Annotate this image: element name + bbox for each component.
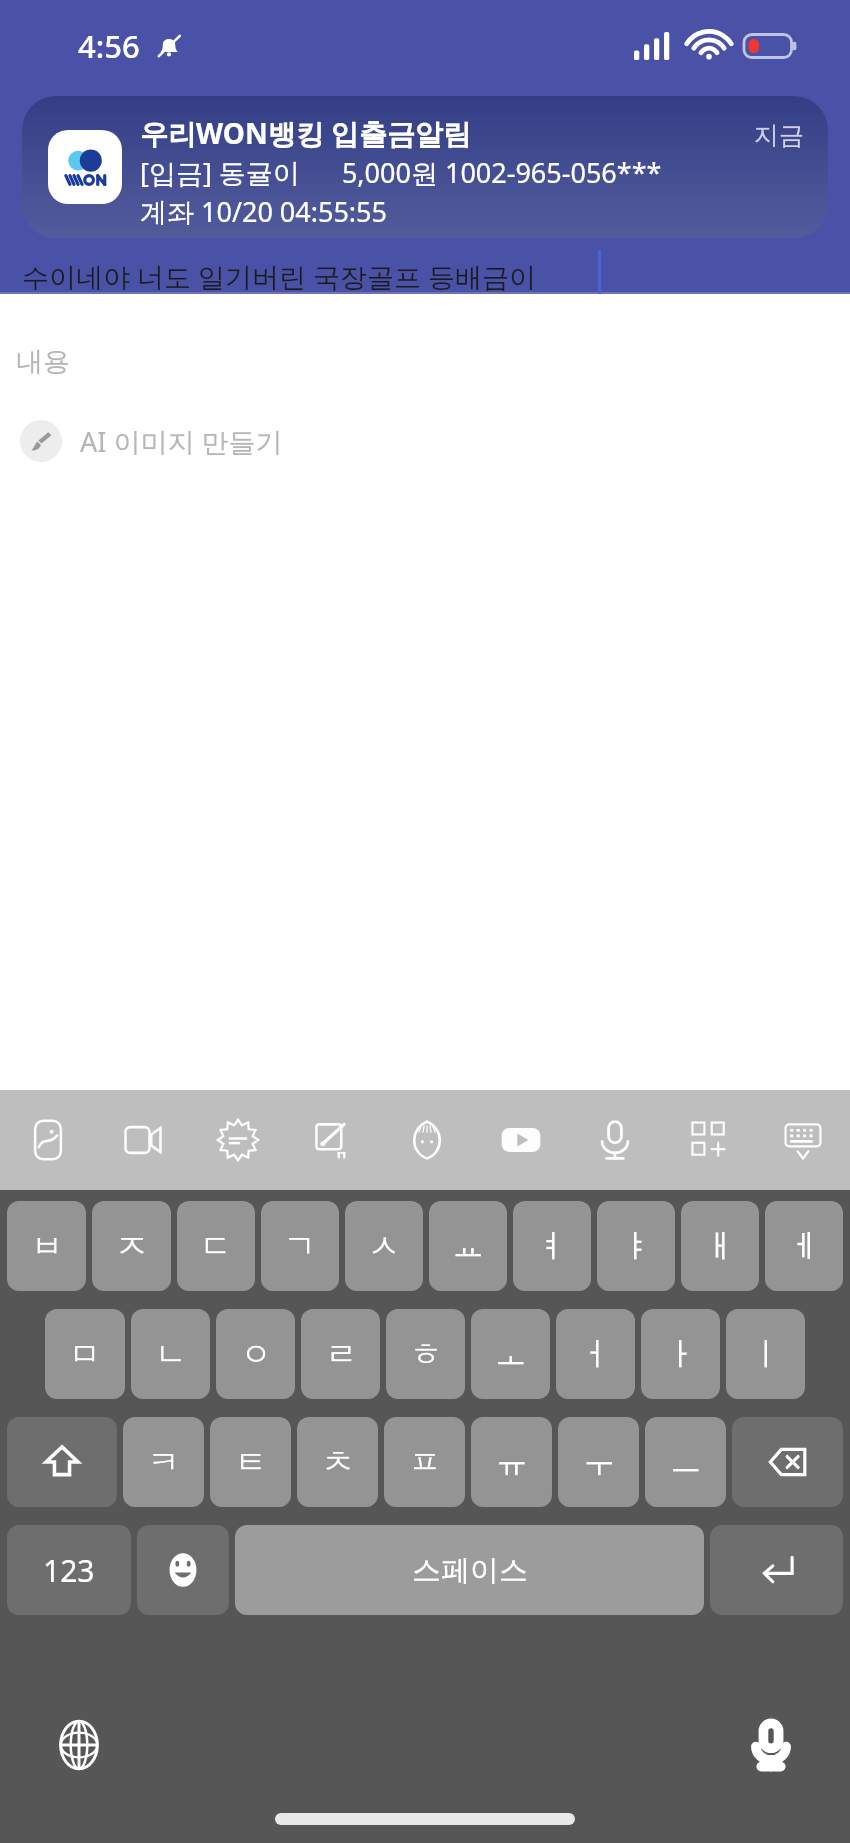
staticText: ㅜ bbox=[583, 1442, 615, 1482]
button[interactable]: ㅊ bbox=[297, 1417, 378, 1507]
button[interactable]: ㄷ bbox=[177, 1201, 255, 1291]
button[interactable]: ㅌ bbox=[210, 1417, 291, 1507]
button[interactable]: Change language bbox=[42, 1708, 116, 1782]
staticText: ㅋ bbox=[148, 1442, 180, 1482]
staticText: ㄷ bbox=[200, 1226, 232, 1266]
staticText: [입금] 동귤이 5,000원 1002-965-056*** bbox=[140, 154, 662, 191]
staticText: ㅁ bbox=[69, 1334, 101, 1374]
button[interactable]: ㅅ bbox=[345, 1201, 423, 1291]
button[interactable]: ㅈ bbox=[92, 1201, 171, 1291]
button[interactable]: ㅓ bbox=[556, 1309, 635, 1399]
button[interactable]: 내용 bbox=[0, 334, 850, 390]
button[interactable]: AI 이미지 만들기 bbox=[0, 410, 850, 472]
staticText: 스페이스 bbox=[412, 1552, 528, 1589]
button[interactable]: Sticker bbox=[380, 1090, 474, 1190]
button[interactable]: 123 bbox=[7, 1525, 131, 1615]
button[interactable]: AI drawing bbox=[285, 1090, 380, 1190]
staticText: ㅔ bbox=[788, 1226, 820, 1266]
staticText: ㅛ bbox=[452, 1226, 484, 1266]
staticText: 계좌 10/20 04:55:55 bbox=[140, 193, 387, 230]
button[interactable]: ㅇ bbox=[216, 1309, 295, 1399]
button[interactable]: YouTube bbox=[474, 1090, 568, 1190]
button[interactable]: ㅜ bbox=[558, 1417, 639, 1507]
button[interactable]: Enter bbox=[710, 1525, 843, 1615]
button[interactable]: Emoji bbox=[137, 1525, 229, 1615]
button[interactable]: ㅑ bbox=[597, 1201, 675, 1291]
staticText: ㅌ bbox=[235, 1442, 267, 1482]
button[interactable]: ㅕ bbox=[513, 1201, 591, 1291]
button[interactable]: Hide keyboard bbox=[756, 1090, 850, 1190]
staticText: 우리WON뱅킹 입출금알림 bbox=[140, 114, 471, 152]
staticText: ㅍ bbox=[409, 1442, 441, 1482]
staticText: ㅓ bbox=[580, 1334, 612, 1374]
staticText: AI 이미지 만들기 bbox=[80, 423, 283, 460]
staticText: ㅂ bbox=[31, 1226, 63, 1266]
button[interactable]: ㄱ bbox=[261, 1201, 339, 1291]
staticText: ㅊ bbox=[322, 1442, 354, 1482]
button[interactable]: ㅎ bbox=[386, 1309, 465, 1399]
button[interactable]: ㅂ bbox=[7, 1201, 86, 1291]
staticText: 내용 bbox=[16, 345, 70, 379]
button[interactable]: ㄹ bbox=[301, 1309, 380, 1399]
button[interactable]: Voice bbox=[568, 1090, 662, 1190]
staticText: ㄹ bbox=[325, 1334, 357, 1374]
button[interactable]: 우리WON뱅킹 입출금알림 bbox=[22, 96, 828, 238]
button[interactable]: ㅁ bbox=[45, 1309, 125, 1399]
staticText: ㅈ bbox=[116, 1226, 148, 1266]
button[interactable]: ㅗ bbox=[471, 1309, 550, 1399]
staticText: ㅇ bbox=[240, 1334, 272, 1374]
button[interactable]: Apps bbox=[662, 1090, 756, 1190]
button[interactable]: Backspace bbox=[732, 1417, 843, 1507]
button[interactable]: Shift bbox=[7, 1417, 117, 1507]
button[interactable]: 스페이스 bbox=[235, 1525, 704, 1615]
button[interactable]: ㅛ bbox=[429, 1201, 507, 1291]
button[interactable]: ㅡ bbox=[645, 1417, 726, 1507]
staticText: 지금 bbox=[754, 120, 804, 151]
staticText: ㅠ bbox=[496, 1442, 528, 1482]
staticText: ㅣ bbox=[750, 1334, 782, 1374]
staticText: ㅕ bbox=[536, 1226, 568, 1266]
button[interactable]: ㅏ bbox=[641, 1309, 720, 1399]
staticText: ㅅ bbox=[368, 1226, 400, 1266]
button[interactable]: Image bbox=[0, 1090, 95, 1190]
staticText: ㄱ bbox=[284, 1226, 316, 1266]
button[interactable]: GIF bbox=[190, 1090, 285, 1190]
button[interactable]: Video bbox=[95, 1090, 190, 1190]
button[interactable]: ㅋ bbox=[123, 1417, 204, 1507]
staticText: ㅎ bbox=[410, 1334, 442, 1374]
staticText: 123 bbox=[43, 1550, 95, 1591]
button[interactable]: ㅠ bbox=[471, 1417, 552, 1507]
staticText: 4:56 bbox=[78, 25, 140, 67]
staticText: ㅡ bbox=[670, 1442, 702, 1482]
button[interactable]: ㅐ bbox=[681, 1201, 759, 1291]
button[interactable]: ㅔ bbox=[765, 1201, 843, 1291]
staticText: ㅑ bbox=[620, 1226, 652, 1266]
button[interactable]: ㄴ bbox=[131, 1309, 210, 1399]
staticText: ㅐ bbox=[704, 1226, 736, 1266]
staticText: 수이네야 너도 일기버린 국장골프 등배금이 bbox=[22, 258, 537, 295]
button[interactable]: ㅍ bbox=[384, 1417, 465, 1507]
staticText: ㄴ bbox=[155, 1334, 187, 1374]
button[interactable]: Voice input bbox=[734, 1708, 808, 1782]
button[interactable]: ㅣ bbox=[726, 1309, 805, 1399]
staticText: ㅗ bbox=[495, 1334, 527, 1374]
staticText: ㅏ bbox=[665, 1334, 697, 1374]
